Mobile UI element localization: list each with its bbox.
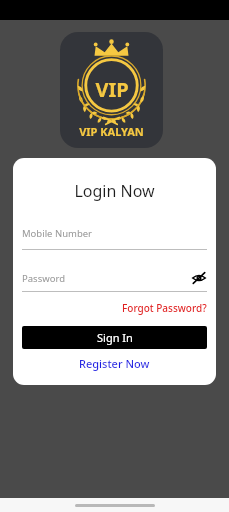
staticText: Login Now	[13, 180, 216, 202]
staticText: Register Now	[79, 356, 150, 371]
staticText: Forgot Password?	[122, 301, 207, 315]
staticText: Password	[22, 272, 191, 285]
staticText: VIP KALYAN	[79, 124, 144, 139]
button[interactable]: Mobile Number	[13, 227, 216, 250]
button[interactable]: Show password	[191, 270, 207, 286]
staticText: VIP	[95, 76, 129, 103]
staticText: Sign In	[97, 330, 133, 345]
button[interactable]: Password	[13, 270, 216, 292]
button[interactable]: Register Now	[79, 356, 150, 371]
button[interactable]: Forgot Password?	[122, 301, 207, 315]
button[interactable]: Sign In	[22, 326, 207, 349]
staticText: Mobile Number	[22, 227, 93, 240]
